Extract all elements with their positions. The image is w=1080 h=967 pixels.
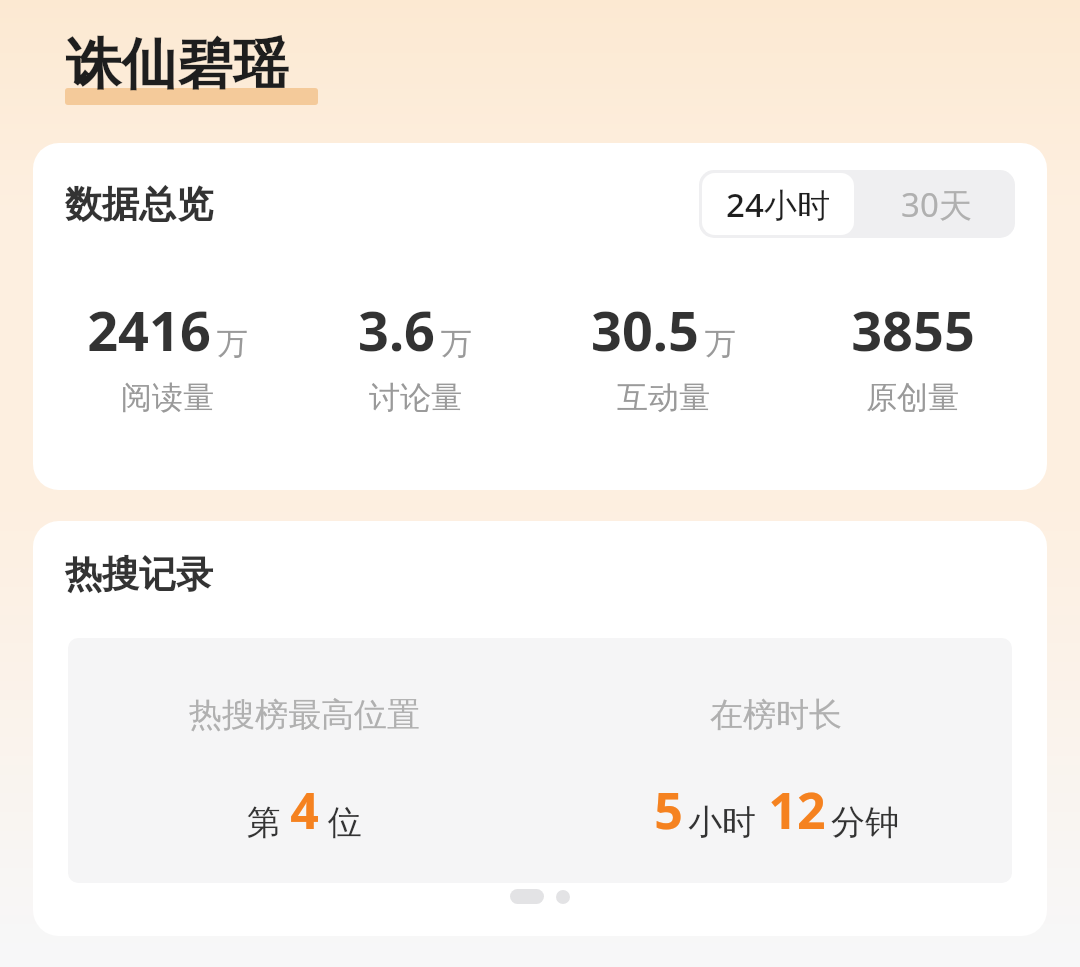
- button[interactable]: 诛仙碧瑶: [65, 30, 318, 99]
- staticText: 位: [328, 801, 362, 844]
- staticText: 诛仙碧瑶: [65, 30, 289, 99]
- staticText: 小时: [688, 801, 756, 844]
- staticText: 3855: [851, 293, 975, 367]
- staticText: 数据总览: [65, 181, 213, 228]
- button[interactable]: 3855: [788, 293, 1037, 417]
- staticText: 原创量: [866, 378, 959, 417]
- staticText: 万: [441, 324, 472, 363]
- staticText: 24小时: [726, 182, 830, 227]
- staticText: 阅读量: [121, 378, 214, 417]
- staticText: 12: [768, 776, 826, 844]
- staticText: 3.6: [358, 293, 435, 367]
- staticText: 万: [705, 324, 736, 363]
- other: Page 1 selected: [510, 889, 544, 904]
- staticText: 5: [654, 776, 683, 844]
- button[interactable]: 30.5: [539, 293, 788, 417]
- staticText: 在榜时长: [710, 694, 842, 736]
- button[interactable]: 热搜榜最高位置: [68, 638, 1012, 883]
- staticText: 万: [217, 324, 248, 363]
- staticText: 分钟: [831, 801, 899, 844]
- button[interactable]: 2416: [43, 293, 291, 417]
- staticText: 热搜记录: [65, 551, 213, 598]
- button[interactable]: 24小时: [702, 173, 854, 235]
- staticText: 讨论量: [369, 378, 462, 417]
- staticText: 热搜榜最高位置: [189, 694, 420, 736]
- other: Page 2: [556, 890, 570, 904]
- staticText: 2416: [87, 293, 211, 367]
- staticText: 第: [247, 801, 281, 844]
- staticText: 30.5: [591, 293, 699, 367]
- staticText: 互动量: [617, 378, 710, 417]
- staticText: 30天: [901, 182, 972, 227]
- button[interactable]: 30天: [857, 170, 1015, 238]
- staticText: 4: [290, 776, 319, 844]
- button[interactable]: 3.6: [291, 293, 539, 417]
